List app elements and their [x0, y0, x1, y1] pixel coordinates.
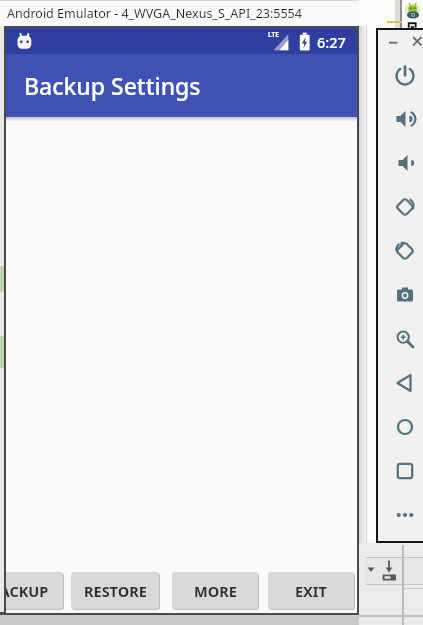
- button[interactable]: [386, 35, 400, 48]
- button[interactable]: [391, 62, 419, 90]
- button[interactable]: [391, 413, 419, 441]
- button[interactable]: [391, 193, 419, 221]
- button[interactable]: [391, 149, 419, 177]
- button[interactable]: [411, 35, 423, 48]
- button[interactable]: EXIT: [268, 572, 354, 609]
- button[interactable]: BACKUP: [6, 572, 63, 609]
- staticText: BACKUP: [6, 581, 49, 601]
- button[interactable]: MORE: [172, 572, 258, 609]
- staticText: MORE: [194, 581, 237, 601]
- button[interactable]: [391, 237, 419, 265]
- staticText: 6:27: [317, 32, 346, 51]
- button[interactable]: [391, 369, 419, 397]
- button[interactable]: [391, 457, 419, 485]
- button[interactable]: [391, 281, 419, 309]
- button[interactable]: RESTORE: [71, 572, 159, 609]
- staticText: Backup Settings: [24, 70, 201, 101]
- button[interactable]: [391, 501, 419, 529]
- staticText: Android Emulator - 4_WVGA_Nexus_S_API_23…: [7, 5, 302, 22]
- staticText: RESTORE: [84, 581, 147, 601]
- button[interactable]: [391, 105, 419, 133]
- staticText: EXIT: [295, 581, 327, 601]
- staticText: LTE: [268, 30, 279, 39]
- button[interactable]: [391, 325, 419, 353]
